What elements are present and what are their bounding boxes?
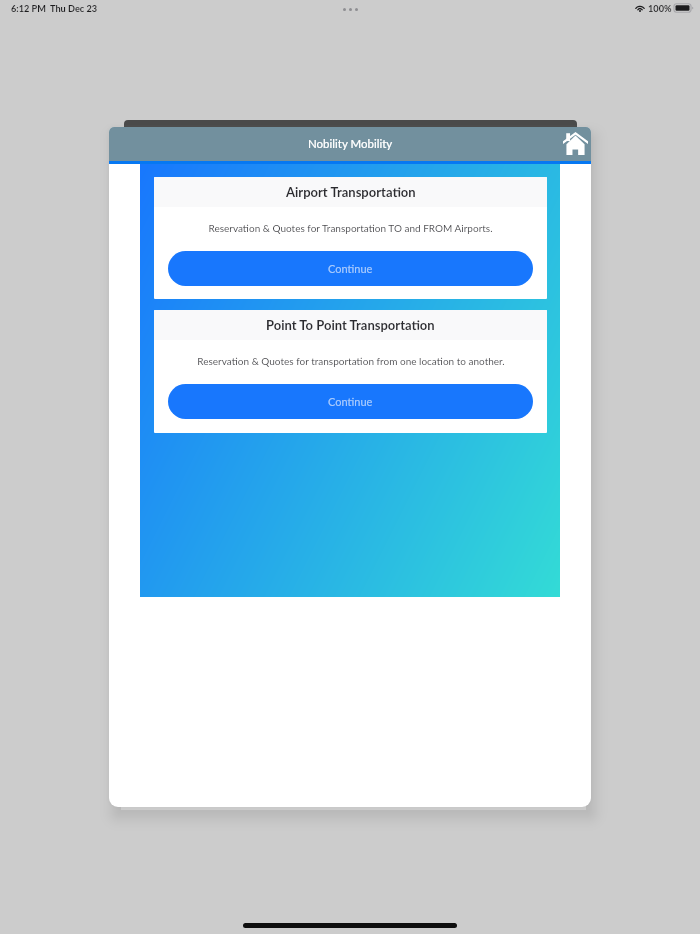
button[interactable]: Continue: [168, 384, 533, 419]
staticText: Reservation & Quotes for Transportation …: [208, 222, 493, 234]
staticText: Continue: [328, 395, 373, 408]
button[interactable]: Airport Transportation: [154, 177, 547, 299]
staticText: 100%: [648, 3, 672, 14]
staticText: 6:12 PM: [11, 3, 46, 14]
staticText: Point To Point Transportation: [266, 317, 435, 333]
staticText: Reservation & Quotes for transportation …: [197, 355, 505, 367]
staticText: Nobility Mobility: [308, 137, 393, 151]
button[interactable]: Home: [555, 127, 591, 161]
button[interactable]: Continue: [168, 251, 533, 286]
staticText: Continue: [328, 262, 373, 275]
staticText: Airport Transportation: [286, 184, 416, 200]
staticText: Thu Dec 23: [50, 3, 98, 14]
button[interactable]: Point To Point Transportation: [154, 310, 547, 433]
